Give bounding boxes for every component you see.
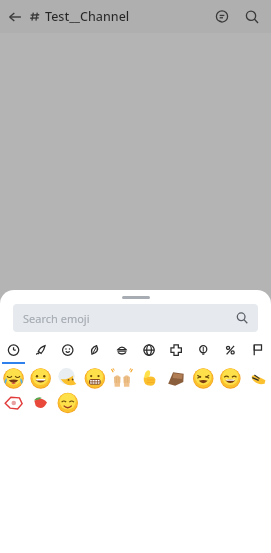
button[interactable]: Emoji 8 xyxy=(190,367,217,392)
button[interactable]: Emoji category 6 xyxy=(136,340,163,362)
button[interactable]: Emoji 13 xyxy=(55,392,82,417)
button[interactable]: Emoji 6 xyxy=(136,367,163,392)
button[interactable]: Emoji category 1 xyxy=(0,340,28,362)
button[interactable]: Search emoji xyxy=(13,304,258,332)
button[interactable]: Emoji 12 xyxy=(28,392,55,417)
button[interactable]: Emoji category 4 xyxy=(82,340,109,362)
button[interactable]: Emoji 4 xyxy=(82,367,109,392)
button[interactable]: Emoji 9 xyxy=(217,367,244,392)
button[interactable]: Emoji category 2 xyxy=(28,340,55,362)
button[interactable]: Emoji 11 xyxy=(0,392,28,417)
button[interactable]: Emoji 3 xyxy=(55,367,82,392)
button[interactable]: Emoji 10 xyxy=(244,367,271,392)
button[interactable]: Emoji category 10 xyxy=(244,340,271,362)
button[interactable]: Emoji category 5 xyxy=(109,340,136,362)
button[interactable]: Back xyxy=(0,2,30,32)
button[interactable]: Emoji category 8 xyxy=(190,340,217,362)
button[interactable]: Emoji 1 xyxy=(0,367,28,392)
button[interactable]: Test__Channel xyxy=(30,8,207,25)
button[interactable]: Emoji category 7 xyxy=(163,340,190,362)
button[interactable]: Emoji category 3 xyxy=(55,340,82,362)
staticText: Search emoji xyxy=(23,311,236,326)
button[interactable]: Threads xyxy=(207,2,237,32)
button[interactable]: Search xyxy=(237,2,267,32)
button[interactable]: Emoji 7 xyxy=(163,367,190,392)
staticText: Test__Channel xyxy=(45,8,130,25)
button[interactable]: Emoji 2 xyxy=(28,367,55,392)
button[interactable]: Emoji 5 xyxy=(109,367,136,392)
button[interactable]: Emoji category 9 xyxy=(217,340,244,362)
